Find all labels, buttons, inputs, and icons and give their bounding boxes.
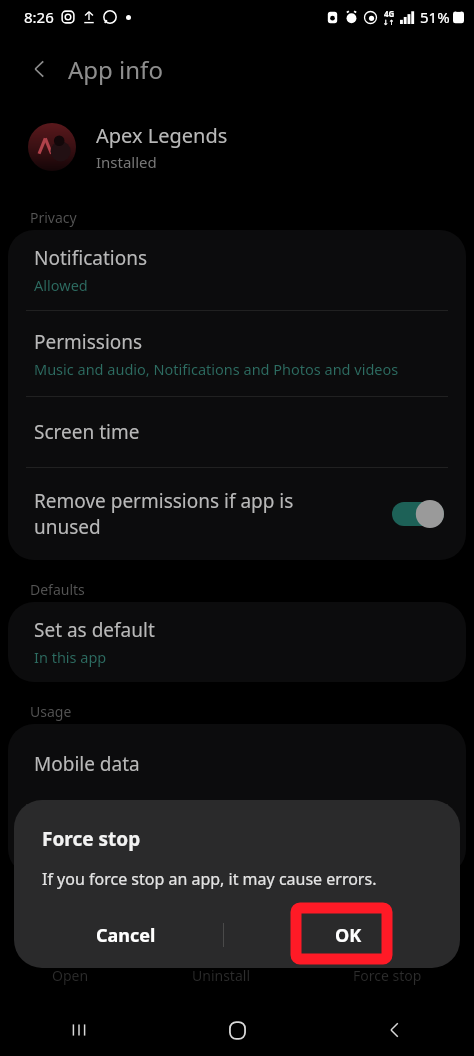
staticText: Screen time xyxy=(34,419,140,445)
button[interactable]: Notifications xyxy=(8,230,466,310)
staticText: Allowed xyxy=(34,275,88,295)
button[interactable]: Set as default xyxy=(8,602,466,682)
staticText: Privacy xyxy=(30,208,77,227)
staticText: Permissions xyxy=(34,329,143,355)
button[interactable]: Home xyxy=(158,1004,316,1056)
staticText: Installed xyxy=(96,152,157,172)
staticText: Mobile data xyxy=(34,751,140,777)
button[interactable]: OK xyxy=(237,904,460,966)
staticText: Usage xyxy=(30,702,72,721)
staticText: If you force stop an app, it may cause e… xyxy=(42,868,377,890)
staticText: Uninstall xyxy=(192,966,250,985)
staticText: 8:26 xyxy=(24,7,54,27)
staticText: OK xyxy=(335,923,362,948)
staticText: Force stop xyxy=(42,826,141,852)
staticText: Set as default xyxy=(34,617,155,643)
button[interactable]: Mobile data xyxy=(8,724,466,804)
button[interactable]: Back xyxy=(316,1004,474,1056)
button[interactable]: Apex Legends xyxy=(0,104,474,190)
staticText: Remove permissions if app is unused xyxy=(34,488,294,540)
staticText: Battery xyxy=(34,827,99,853)
staticText: Notifications xyxy=(34,245,148,271)
button[interactable]: Battery xyxy=(8,805,466,875)
staticText: Defaults xyxy=(30,580,85,599)
staticText: Open xyxy=(52,966,89,985)
button[interactable]: Permissions xyxy=(8,311,466,396)
staticText: ↓↑ xyxy=(383,19,395,27)
button[interactable]: Screen time xyxy=(8,397,466,467)
button[interactable]: Cancel xyxy=(14,904,237,966)
staticText: Force stop xyxy=(353,966,422,985)
staticText: Apex Legends xyxy=(96,122,228,149)
staticText: In this app xyxy=(34,647,107,667)
staticText: Music and audio, Notifications and Photo… xyxy=(34,359,399,379)
button[interactable]: Back xyxy=(22,51,58,87)
staticText: 4G xyxy=(384,8,395,19)
staticText: 51% xyxy=(420,7,450,27)
button[interactable]: Remove permissions if app is unused xyxy=(8,468,466,560)
staticText: Cancel xyxy=(96,923,156,948)
button[interactable]: Recents xyxy=(0,1004,158,1056)
staticText: App info xyxy=(68,53,163,86)
